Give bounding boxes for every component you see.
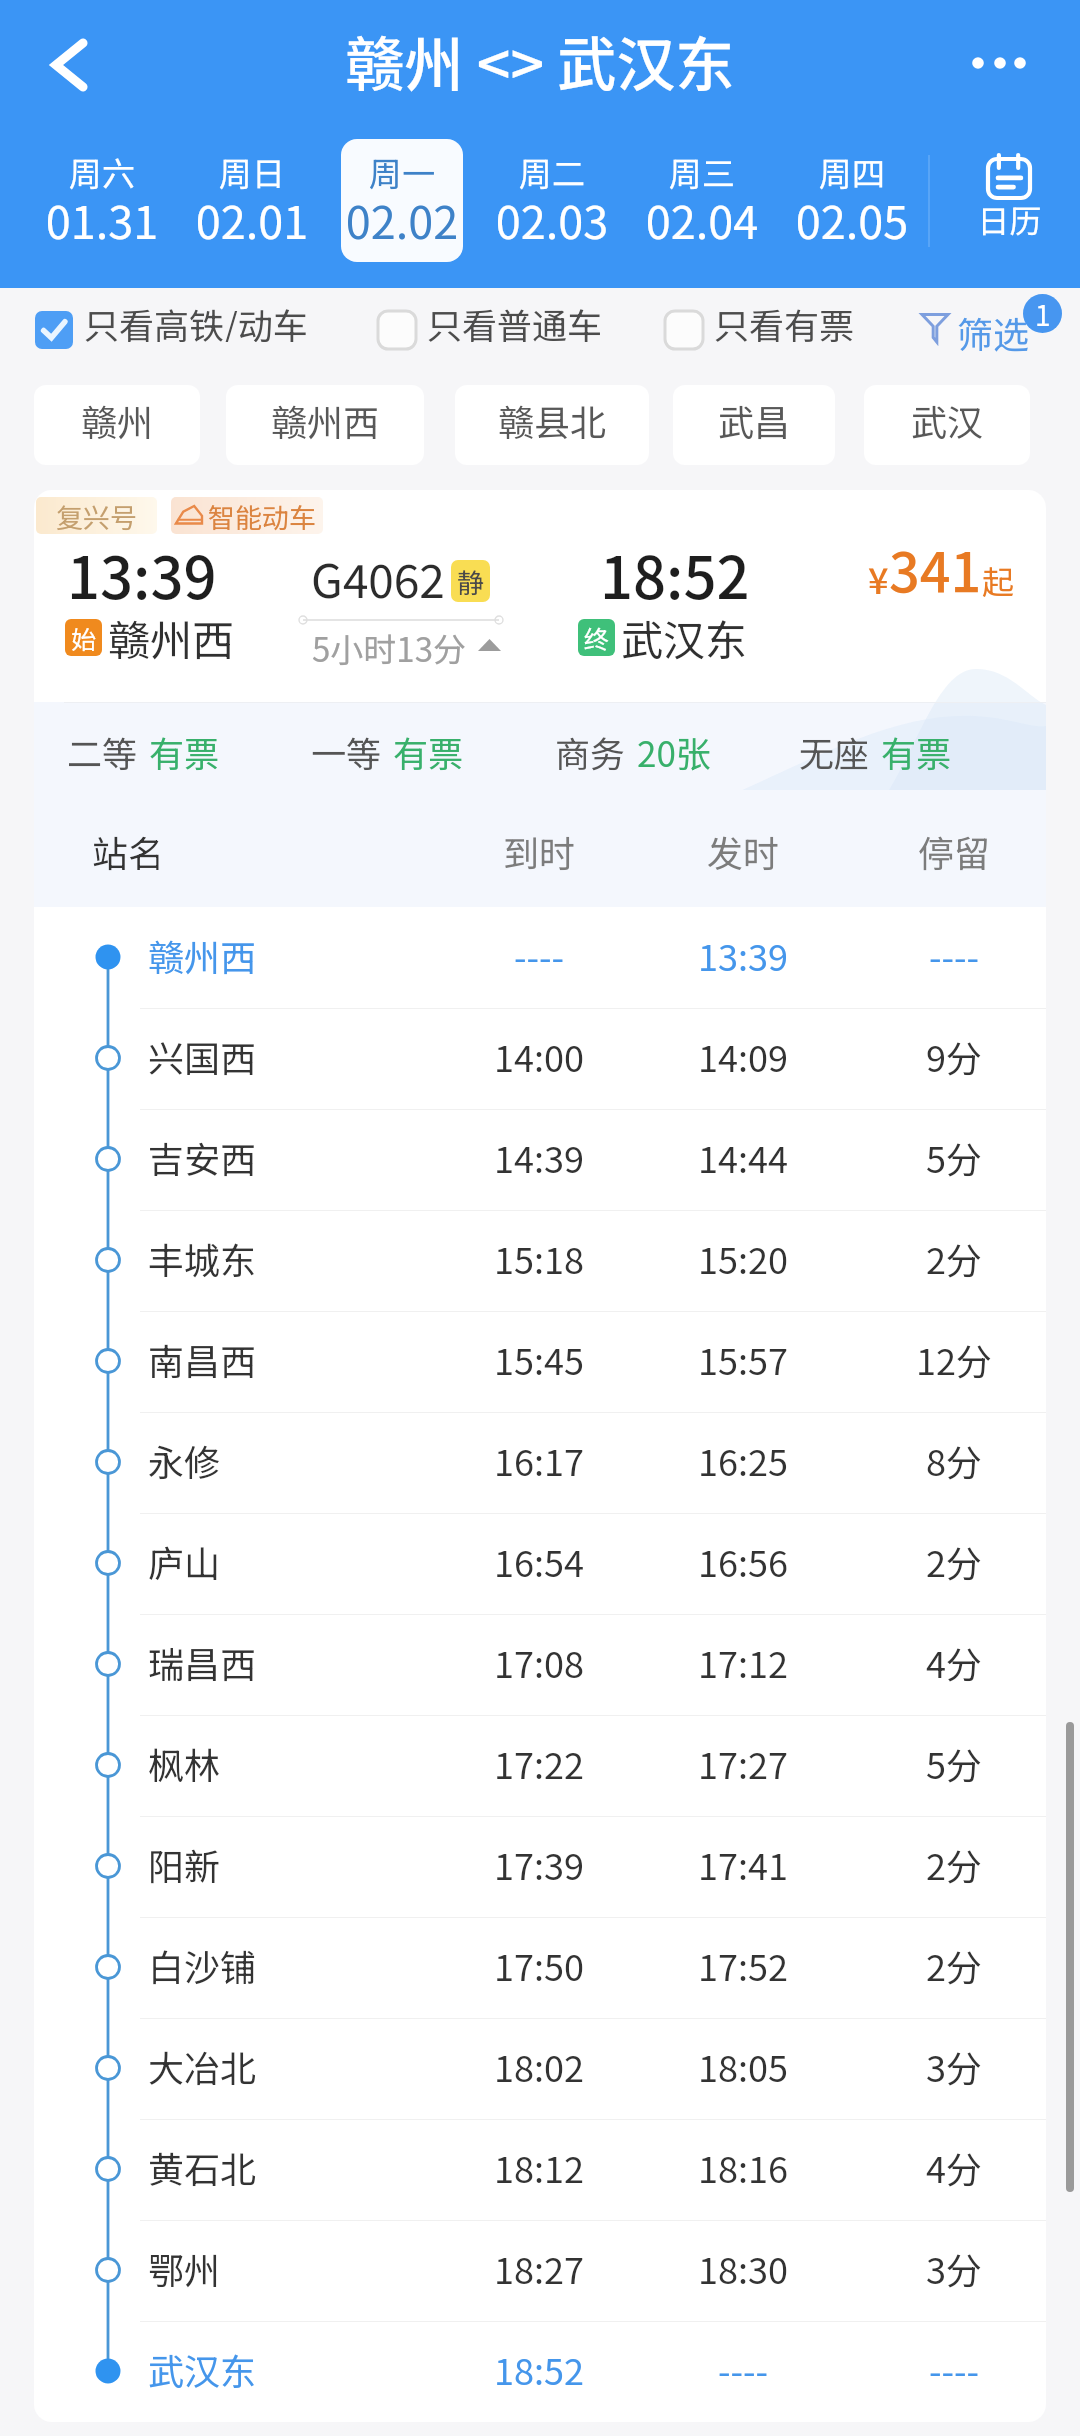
button[interactable]: 赣州 [34, 385, 200, 465]
button[interactable] [34, 1513, 1046, 1614]
staticText: 白沙铺 [148, 1939, 257, 1991]
staticText: 17:12 [643, 1636, 843, 1688]
button[interactable]: Calendar [940, 139, 1070, 262]
staticText: ---- [854, 929, 1046, 981]
staticText: 15:20 [643, 1232, 843, 1284]
staticText: 武汉东 [621, 607, 748, 668]
button[interactable]: 只看普通车 [378, 308, 603, 352]
staticText: 16:56 [643, 1535, 843, 1587]
button[interactable] [34, 1311, 1046, 1412]
button[interactable] [34, 1614, 1046, 1715]
button[interactable] [34, 1816, 1046, 1917]
staticText: 8分 [854, 1434, 1046, 1486]
staticText: 站名 [92, 825, 165, 877]
staticText: 永修 [148, 1434, 221, 1486]
staticText: 大冶北 [148, 2040, 257, 2092]
staticText: 14:39 [439, 1131, 639, 1183]
staticText: ---- [439, 929, 639, 981]
staticText: 有票 [393, 726, 464, 776]
staticText: 枫林 [148, 1737, 221, 1789]
staticText: 停留 [854, 825, 1046, 877]
staticText: 始 [71, 620, 97, 656]
staticText: 2分 [854, 1838, 1046, 1890]
button[interactable]: 赣县北 [455, 385, 649, 465]
staticText: 2分 [854, 1232, 1046, 1284]
button[interactable] [34, 1917, 1046, 2018]
staticText: ---- [854, 2343, 1046, 2395]
button[interactable]: 周四 [791, 139, 913, 262]
staticText: 南昌西 [148, 1333, 257, 1385]
button[interactable]: 无座 [799, 726, 952, 776]
staticText: 静 [457, 562, 484, 601]
staticText: 4分 [854, 1636, 1046, 1688]
staticText: G4062 [311, 545, 445, 612]
button[interactable] [34, 1715, 1046, 1816]
button[interactable] [34, 2321, 1046, 2422]
staticText: 18:12 [439, 2141, 639, 2193]
button[interactable] [34, 2018, 1046, 2119]
staticText: 15:45 [439, 1333, 639, 1385]
button[interactable]: More options [955, 20, 1041, 106]
button[interactable]: 二等 [67, 726, 220, 776]
staticText: 武昌 [673, 394, 835, 446]
staticText: 16:25 [643, 1434, 843, 1486]
staticText: 01.31 [41, 187, 163, 252]
staticText: 赣县北 [455, 394, 649, 446]
staticText: 黄石北 [148, 2141, 257, 2193]
staticText: 二等 [67, 726, 138, 776]
button[interactable]: 筛选 [914, 300, 1034, 350]
staticText: 5小时13分 [312, 624, 466, 672]
button[interactable] [34, 2119, 1046, 2220]
button[interactable] [34, 1109, 1046, 1210]
staticText: 赣州 [34, 394, 200, 446]
staticText: 02.03 [491, 187, 613, 252]
staticText: 赣州西 [226, 394, 424, 446]
button[interactable]: 赣州西 [226, 385, 424, 465]
staticText: 17:22 [439, 1737, 639, 1789]
button[interactable]: 周日 [191, 139, 313, 262]
staticText: 5分 [854, 1737, 1046, 1789]
staticText: 武汉东 [148, 2343, 257, 2395]
button[interactable]: 商务 [555, 726, 711, 776]
staticText: 一等 [311, 726, 382, 776]
staticText: 只看高铁/动车 [84, 298, 308, 342]
staticText: 3分 [854, 2242, 1046, 2294]
button[interactable] [34, 1210, 1046, 1311]
button[interactable]: 只看有票 [665, 308, 855, 352]
staticText: 日历 [977, 196, 1042, 242]
staticText: 18:16 [643, 2141, 843, 2193]
staticText: 吉安西 [148, 1131, 257, 1183]
button[interactable] [34, 1412, 1046, 1513]
staticText: 终 [584, 620, 610, 656]
button[interactable]: 周二 [491, 139, 613, 262]
staticText: 02.05 [791, 187, 913, 252]
button[interactable] [34, 907, 1046, 1008]
button[interactable]: 周六 [41, 139, 163, 262]
staticText: 鄂州 [148, 2242, 221, 2294]
staticText: 4分 [854, 2141, 1046, 2193]
staticText: 5分 [854, 1131, 1046, 1183]
button[interactable]: 只看高铁/动车 [35, 308, 308, 352]
staticText: 发时 [643, 825, 843, 877]
button[interactable]: 周三 [641, 139, 763, 262]
button[interactable] [34, 1008, 1046, 1109]
staticText: 智能动车 [208, 497, 316, 534]
staticText: 赣州西 [148, 929, 257, 981]
button[interactable]: 一等 [311, 726, 464, 776]
staticText: 周六 [41, 148, 163, 196]
button[interactable] [34, 2220, 1046, 2321]
staticText: 17:52 [643, 1939, 843, 1991]
button[interactable]: 周一 [341, 139, 463, 262]
staticText: 02.04 [641, 187, 763, 252]
staticText: 商务 [555, 726, 626, 776]
staticText: 3分 [854, 2040, 1046, 2092]
staticText: 2分 [854, 1535, 1046, 1587]
button[interactable]: 武汉 [864, 385, 1030, 465]
staticText: 有票 [881, 726, 952, 776]
button[interactable]: 武昌 [673, 385, 835, 465]
staticText: 13:39 [643, 929, 843, 981]
button[interactable]: Back [28, 22, 114, 108]
staticText: 18:52 [600, 532, 750, 616]
staticText: 15:18 [439, 1232, 639, 1284]
staticText: 17:41 [643, 1838, 843, 1890]
